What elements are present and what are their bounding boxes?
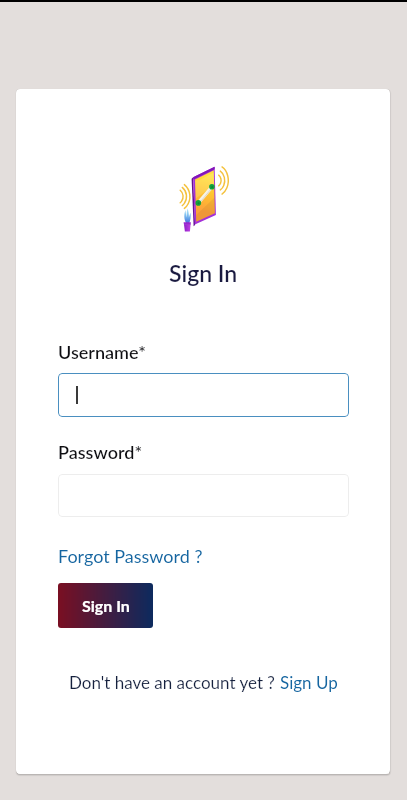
staticText: Forgot Password ? <box>58 545 203 567</box>
staticText: Password* <box>58 441 143 463</box>
other: Secure sign in illustration <box>177 165 230 233</box>
button[interactable]: Forgot Password ? <box>58 545 203 567</box>
button[interactable] <box>58 474 349 517</box>
staticText: Sign In <box>82 596 130 615</box>
button[interactable]: Sign Up <box>280 672 338 692</box>
staticText: Sign Up <box>280 672 338 692</box>
staticText: Don't have an account yet ? <box>69 672 280 692</box>
button[interactable] <box>58 373 349 417</box>
staticText: Sign In <box>169 259 238 287</box>
button[interactable]: Sign In <box>58 583 153 628</box>
staticText: Username* <box>58 341 146 363</box>
